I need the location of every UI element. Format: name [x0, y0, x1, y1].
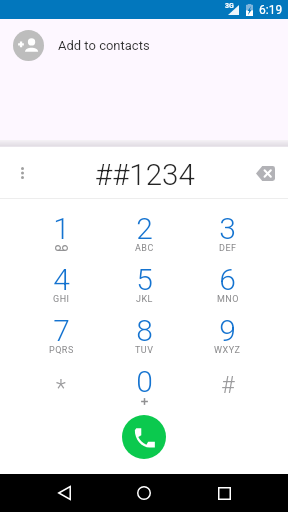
staticText: 5 [136, 262, 153, 297]
staticText: 9 [219, 313, 236, 348]
staticText: * [56, 375, 66, 402]
staticText: 6:19 [259, 3, 283, 17]
button[interactable]: # [186, 356, 269, 407]
button[interactable]: 5 [103, 254, 186, 305]
button[interactable]: Home [120, 474, 168, 512]
staticText: 0 [136, 364, 153, 399]
button[interactable]: * [19, 356, 103, 407]
staticText: PQRS [49, 345, 74, 356]
button[interactable]: Backspace [243, 147, 288, 199]
button[interactable]: 8 [103, 305, 186, 356]
button[interactable]: 3 [186, 203, 269, 254]
staticText: GHI [53, 294, 70, 305]
button[interactable]: Back [40, 474, 88, 512]
staticText: 8 [136, 313, 153, 348]
staticText: 1 [53, 211, 70, 246]
staticText: JKL [136, 294, 153, 305]
button[interactable]: 9 [186, 305, 269, 356]
staticText: 3 [219, 211, 236, 246]
staticText: DEF [219, 243, 237, 254]
staticText: 4 [53, 262, 70, 297]
staticText: 3G [225, 2, 234, 10]
button[interactable]: Recents [200, 474, 248, 512]
staticText: 2 [136, 211, 153, 246]
staticText: TUV [135, 345, 154, 356]
staticText: 6 [219, 262, 236, 297]
button[interactable]: Call [122, 415, 166, 459]
staticText: MNO [217, 294, 239, 305]
staticText: WXYZ [214, 345, 241, 356]
button[interactable]: 1 [19, 203, 103, 254]
staticText: ##1234 [95, 158, 195, 193]
button[interactable]: 2 [103, 203, 186, 254]
button[interactable]: 4 [19, 254, 103, 305]
staticText: Add to contacts [58, 38, 150, 53]
button[interactable]: More options [0, 147, 45, 199]
button[interactable]: 0 [103, 356, 186, 407]
staticText: ABC [135, 243, 154, 254]
button[interactable]: Add to contacts [0, 19, 288, 72]
staticText: # [221, 372, 235, 399]
staticText: 7 [53, 313, 70, 348]
button[interactable]: 7 [19, 305, 103, 356]
button[interactable]: 6 [186, 254, 269, 305]
